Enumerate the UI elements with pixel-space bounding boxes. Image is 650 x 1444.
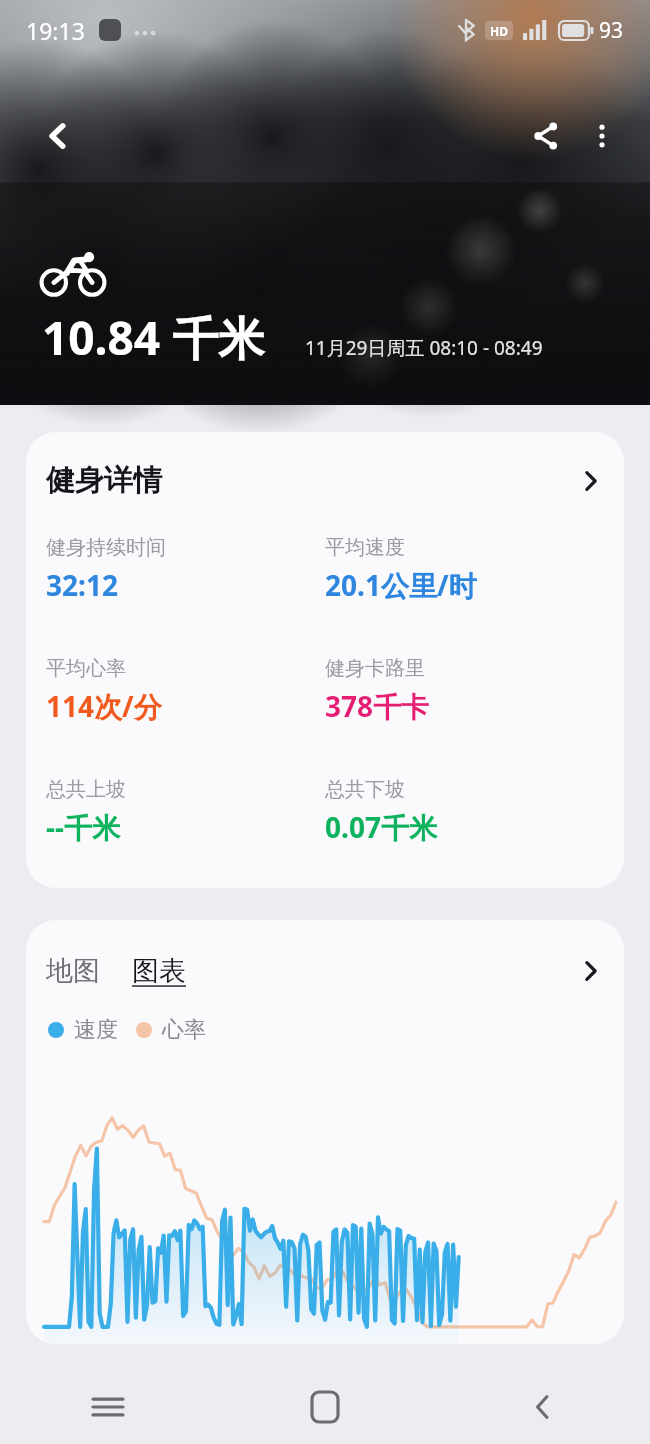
button[interactable]: Open chart [578, 958, 604, 984]
button[interactable]: Share [518, 108, 574, 164]
staticText: 平均心率 [46, 656, 126, 681]
staticText: 平均速度 [325, 535, 405, 560]
staticText: --千米 [46, 808, 120, 846]
staticText: 19:13 [26, 15, 85, 46]
button[interactable]: 图表 [132, 954, 186, 988]
staticText: 总共下坡 [325, 777, 405, 802]
button[interactable]: 地图 [46, 954, 100, 988]
staticText: 32:12 [46, 566, 118, 604]
button[interactable]: More options [574, 108, 630, 164]
staticText: 心率 [162, 1016, 206, 1044]
button[interactable]: Home [216, 1370, 433, 1444]
staticText: 378千卡 [325, 687, 430, 725]
staticText: 20.1公里/时 [325, 566, 477, 604]
staticText: 10.84 千米 [42, 306, 265, 369]
staticText: 速度 [74, 1016, 118, 1044]
button[interactable]: 健身详情 [26, 432, 624, 888]
button[interactable]: Back [433, 1370, 650, 1444]
staticText: 总共上坡 [46, 777, 126, 802]
staticText: 93 [599, 16, 624, 45]
staticText: 健身详情 [46, 462, 162, 499]
button[interactable]: Recent apps [0, 1370, 216, 1444]
staticText: 图表 [132, 954, 186, 988]
staticText: 11月29日周五 08:10 - 08:49 [305, 335, 543, 361]
staticText: 114次/分 [46, 687, 162, 725]
staticText: 地图 [46, 954, 100, 988]
staticText: 0.07千米 [325, 808, 437, 846]
button[interactable]: Back [30, 108, 86, 164]
staticText: 健身卡路里 [325, 656, 425, 681]
staticText: HD [490, 23, 508, 39]
staticText: 健身持续时间 [46, 535, 166, 560]
